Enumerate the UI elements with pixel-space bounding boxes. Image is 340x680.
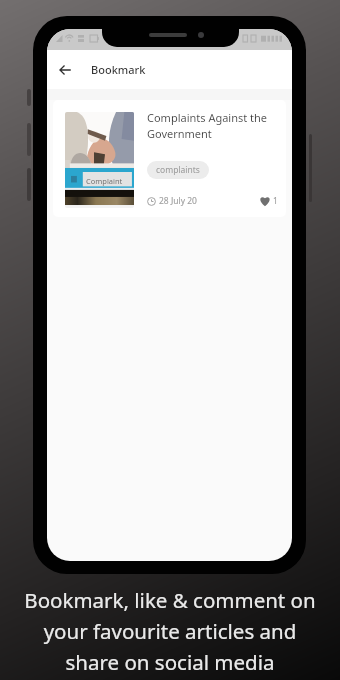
staticText: 1 <box>273 195 278 207</box>
button[interactable]: complaints <box>147 161 209 179</box>
staticText: 28 July 20 <box>159 195 197 207</box>
staticText: complaints <box>156 164 200 176</box>
staticText: Complaint <box>86 176 123 186</box>
staticText: Complaints Against the Government <box>147 110 278 141</box>
button[interactable]: Back <box>52 57 78 83</box>
button[interactable]: Complaint <box>53 100 286 217</box>
staticText: Bookmark <box>91 62 146 77</box>
staticText: Bookmark, like & comment on your favouri… <box>0 586 340 676</box>
